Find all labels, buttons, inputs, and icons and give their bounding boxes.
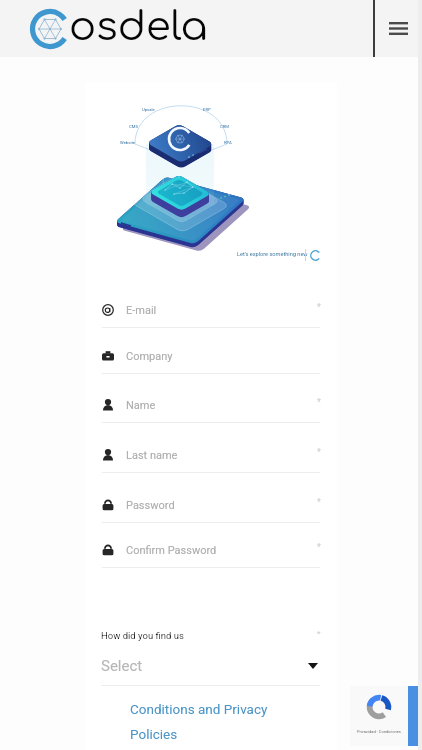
staticText: Company [126, 350, 173, 363]
staticText: ERP [203, 107, 211, 112]
button[interactable]: Conditions and Privacy [130, 699, 268, 718]
staticText: * [317, 497, 321, 508]
button[interactable]: How did you find us [85, 625, 337, 687]
staticText: * [317, 397, 321, 408]
staticText: Conditions and Privacy [130, 701, 268, 717]
staticText: Let's explore something new [237, 251, 308, 258]
staticText: * [317, 302, 321, 313]
staticText: * [317, 447, 321, 458]
staticText: Website [120, 140, 135, 145]
staticText: Name [126, 399, 156, 412]
staticText: Confirm Password [126, 544, 217, 557]
button[interactable]: E-mail [85, 293, 337, 328]
staticText: Privacidad - Condiciones [357, 729, 401, 734]
button[interactable]: reCAPTCHA privacy and terms [350, 686, 408, 746]
staticText: CMS [129, 124, 138, 129]
staticText: osdela [69, 5, 208, 50]
staticText: Last name [126, 449, 178, 462]
staticText: * [317, 542, 321, 553]
staticText: How did you find us [101, 630, 184, 641]
staticText: * [317, 629, 321, 638]
button[interactable]: Name [85, 388, 337, 423]
button[interactable]: Policies [130, 724, 178, 743]
staticText: CRM [220, 124, 229, 129]
button[interactable]: Company [85, 339, 337, 374]
button[interactable]: Confirm Password [85, 533, 337, 568]
staticText: Upsale [142, 107, 155, 112]
staticText: RPA [224, 140, 232, 145]
button[interactable]: Last name [85, 438, 337, 473]
staticText: Password [126, 499, 175, 512]
staticText: Policies [130, 726, 178, 742]
button[interactable]: Open menu [375, 0, 422, 57]
button[interactable]: Password [85, 488, 337, 523]
staticText: E-mail [126, 304, 157, 317]
staticText: Select [101, 657, 143, 675]
